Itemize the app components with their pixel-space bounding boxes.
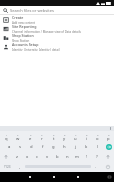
staticText: c: [36, 154, 39, 160]
staticText: Shop Station: [12, 39, 30, 42]
staticText: 2: [17, 133, 19, 136]
button[interactable]: Back: [26, 173, 34, 181]
button[interactable]: j: [70, 142, 81, 152]
staticText: q: [5, 136, 8, 142]
button[interactable]: g: [48, 142, 59, 152]
button[interactable]: Create: [0, 15, 114, 24]
staticText: 5: [53, 133, 55, 136]
staticText: Add new content: [12, 21, 35, 24]
button[interactable]: d: [26, 142, 37, 152]
button[interactable]: 5: [48, 132, 59, 142]
button[interactable]: a: [4, 142, 15, 152]
staticText: t: [53, 136, 55, 142]
button[interactable]: x: [22, 152, 32, 162]
staticText: 1: [6, 133, 8, 136]
staticText: Site Reporting: [12, 24, 37, 29]
staticText: ?: [96, 154, 98, 160]
staticText: o: [96, 136, 99, 142]
staticText: 8: [86, 133, 88, 136]
button[interactable]: 3: [24, 132, 36, 142]
button[interactable]: 2: [12, 132, 24, 142]
button[interactable]: Accounts Setup: [0, 42, 114, 51]
button[interactable]: Recents: [74, 173, 82, 181]
staticText: i: [86, 136, 88, 142]
staticText: !: [86, 154, 88, 160]
button[interactable]: l: [92, 142, 103, 152]
button[interactable]: Shift: [0, 152, 12, 162]
staticText: n: [66, 154, 69, 160]
staticText: 9: [97, 133, 99, 136]
staticText: 4: [41, 133, 43, 136]
button[interactable]: Search: [0, 6, 114, 14]
staticText: m: [75, 154, 79, 160]
staticText: ?123: [4, 165, 11, 169]
button[interactable]: 1: [0, 132, 12, 142]
button[interactable]: k: [81, 142, 92, 152]
staticText: g: [52, 144, 55, 150]
other: Keyboard options: [109, 127, 112, 130]
button[interactable]: Enter: [103, 142, 114, 152]
button[interactable]: ,: [15, 162, 25, 171]
button[interactable]: 0: [103, 132, 114, 142]
button[interactable]: 6: [59, 132, 70, 142]
button[interactable]: Home: [50, 173, 58, 181]
staticText: .: [95, 164, 97, 170]
staticText: d: [30, 144, 33, 150]
staticText: l: [97, 144, 99, 150]
button[interactable]: 4: [36, 132, 48, 142]
staticText: b: [56, 154, 59, 160]
staticText: Create: [12, 15, 24, 20]
staticText: 6: [64, 133, 66, 136]
button[interactable]: ?: [92, 152, 102, 162]
button[interactable]: c: [32, 152, 42, 162]
staticText: h: [63, 144, 66, 150]
button[interactable]: 8: [81, 132, 92, 142]
button[interactable]: 7: [70, 132, 81, 142]
staticText: z: [16, 154, 18, 160]
staticText: Search files or websites: [10, 8, 54, 13]
button[interactable]: m: [72, 152, 82, 162]
staticText: p: [107, 136, 110, 142]
staticText: w: [16, 136, 20, 142]
staticText: v: [46, 154, 49, 160]
button[interactable]: Shop Station: [0, 33, 114, 42]
button[interactable]: h: [59, 142, 70, 152]
staticText: ,: [19, 164, 21, 170]
button[interactable]: v: [42, 152, 52, 162]
staticText: r: [41, 136, 43, 142]
staticText: x: [26, 154, 29, 160]
staticText: y: [63, 136, 66, 142]
staticText: a: [8, 144, 11, 150]
button[interactable]: n: [62, 152, 72, 162]
button[interactable]: Site Reporting: [0, 24, 114, 33]
button[interactable]: Shift: [102, 152, 114, 162]
other: Search: [3, 8, 8, 13]
staticText: 3: [30, 133, 32, 136]
button[interactable]: Keyboard: [105, 173, 113, 181]
staticText: Identity, University. Identity / detail: [12, 48, 60, 51]
staticText: e: [29, 136, 32, 142]
staticText: 7: [75, 133, 77, 136]
staticText: Shop Station: [12, 33, 34, 38]
staticText: f: [42, 144, 44, 150]
button[interactable]: !: [82, 152, 92, 162]
button[interactable]: b: [52, 152, 62, 162]
button[interactable]: Symbols: [0, 162, 15, 171]
staticText: k: [85, 144, 88, 150]
button[interactable]: 9: [92, 132, 103, 142]
staticText: Accounts Setup: [12, 42, 39, 47]
button[interactable]: s: [15, 142, 26, 152]
staticText: j: [75, 144, 77, 150]
staticText: Channel information / Manage view of Dat…: [12, 30, 81, 33]
button[interactable]: z: [12, 152, 22, 162]
staticText: u: [74, 136, 77, 142]
staticText: s: [19, 144, 22, 150]
button[interactable]: f: [37, 142, 48, 152]
staticText: 0: [108, 133, 110, 136]
button[interactable]: Emoji: [101, 162, 114, 171]
